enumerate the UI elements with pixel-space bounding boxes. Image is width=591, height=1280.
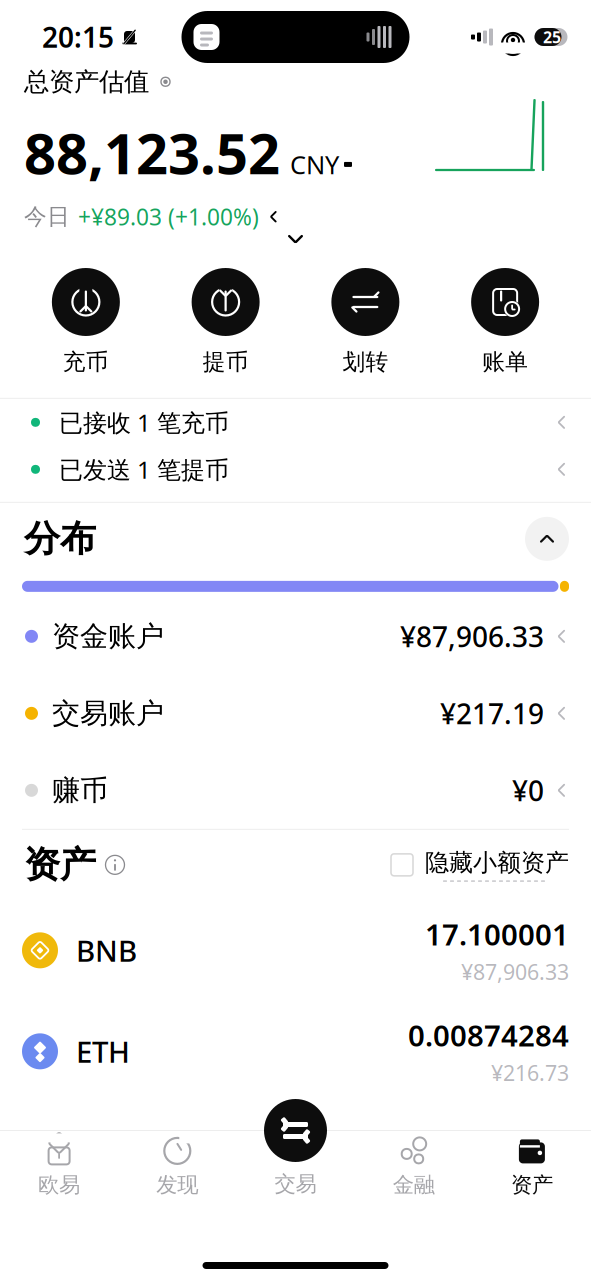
staticText: 25	[543, 26, 561, 48]
staticText: 今日	[24, 203, 70, 231]
staticText: ¥87,906.33	[461, 958, 569, 986]
button[interactable]: 资金账户	[0, 598, 591, 675]
button[interactable]: 发现	[118, 1131, 236, 1203]
staticText: 17.100001	[425, 915, 569, 954]
button[interactable]: 收起	[265, 224, 325, 254]
staticText: +¥89.03 (+1.00%)	[78, 202, 259, 232]
staticText: BNB	[76, 931, 137, 970]
staticText: 总资产估值	[24, 66, 149, 97]
staticText: 金融	[393, 1172, 435, 1198]
staticText: 资产	[24, 843, 96, 887]
button[interactable]: 充币	[16, 268, 156, 376]
staticText: 充币	[63, 348, 109, 376]
button[interactable]: 资产	[473, 1131, 591, 1203]
button[interactable]: 提币	[156, 268, 296, 376]
staticText: 交易	[274, 1171, 316, 1197]
staticText: 资产	[511, 1172, 553, 1198]
staticText: ¥217.19	[440, 695, 544, 732]
staticText: 0.00874284	[408, 1016, 569, 1055]
staticText: 20:15	[42, 18, 114, 56]
button[interactable]: 选择计价货币 CNY	[0, 115, 591, 190]
staticText: CNY	[290, 148, 339, 181]
button[interactable]: 交易账户	[0, 675, 591, 752]
staticText: ¥216.73	[491, 1059, 569, 1087]
button[interactable]: 隐藏总资产估值	[0, 66, 591, 97]
staticText: 交易账户	[52, 696, 164, 730]
staticText: 已接收 1 笔充币	[59, 406, 229, 438]
button[interactable]: 已接收 1 笔充币	[0, 399, 591, 446]
staticText: 分布	[24, 517, 96, 561]
button[interactable]: 赚币	[0, 752, 591, 829]
staticText: ETH	[76, 1032, 130, 1071]
button[interactable]: 欧易	[0, 1131, 118, 1203]
button[interactable]: 资产说明	[96, 855, 125, 875]
staticText: 赚币	[52, 773, 108, 807]
staticText: 88,123.52	[24, 115, 280, 190]
staticText: 资金账户	[52, 619, 164, 653]
button[interactable]: ETH	[0, 1001, 591, 1102]
staticText: 发现	[156, 1172, 198, 1198]
staticText: 提币	[203, 348, 249, 376]
staticText: 已发送 1 笔提币	[59, 453, 229, 485]
button[interactable]: 今日收益详情	[0, 202, 591, 232]
button[interactable]: 已发送 1 笔提币	[0, 446, 591, 493]
button[interactable]: 划转	[295, 268, 435, 376]
staticText: 账单	[482, 348, 528, 376]
button[interactable]: 交易	[264, 1099, 327, 1162]
button[interactable]: BNB	[0, 900, 591, 1001]
button[interactable]: 收起分布	[525, 517, 569, 561]
staticText: ¥87,906.33	[400, 618, 544, 655]
staticText: 划转	[342, 348, 388, 376]
staticText: 隐藏小额资产	[425, 848, 569, 877]
button[interactable]: 账单	[435, 268, 575, 376]
button[interactable]: 隐藏小额资产	[391, 848, 569, 882]
staticText: 欧易	[38, 1172, 80, 1198]
staticText: ¥0	[512, 772, 544, 809]
button[interactable]: 金融	[355, 1131, 473, 1203]
